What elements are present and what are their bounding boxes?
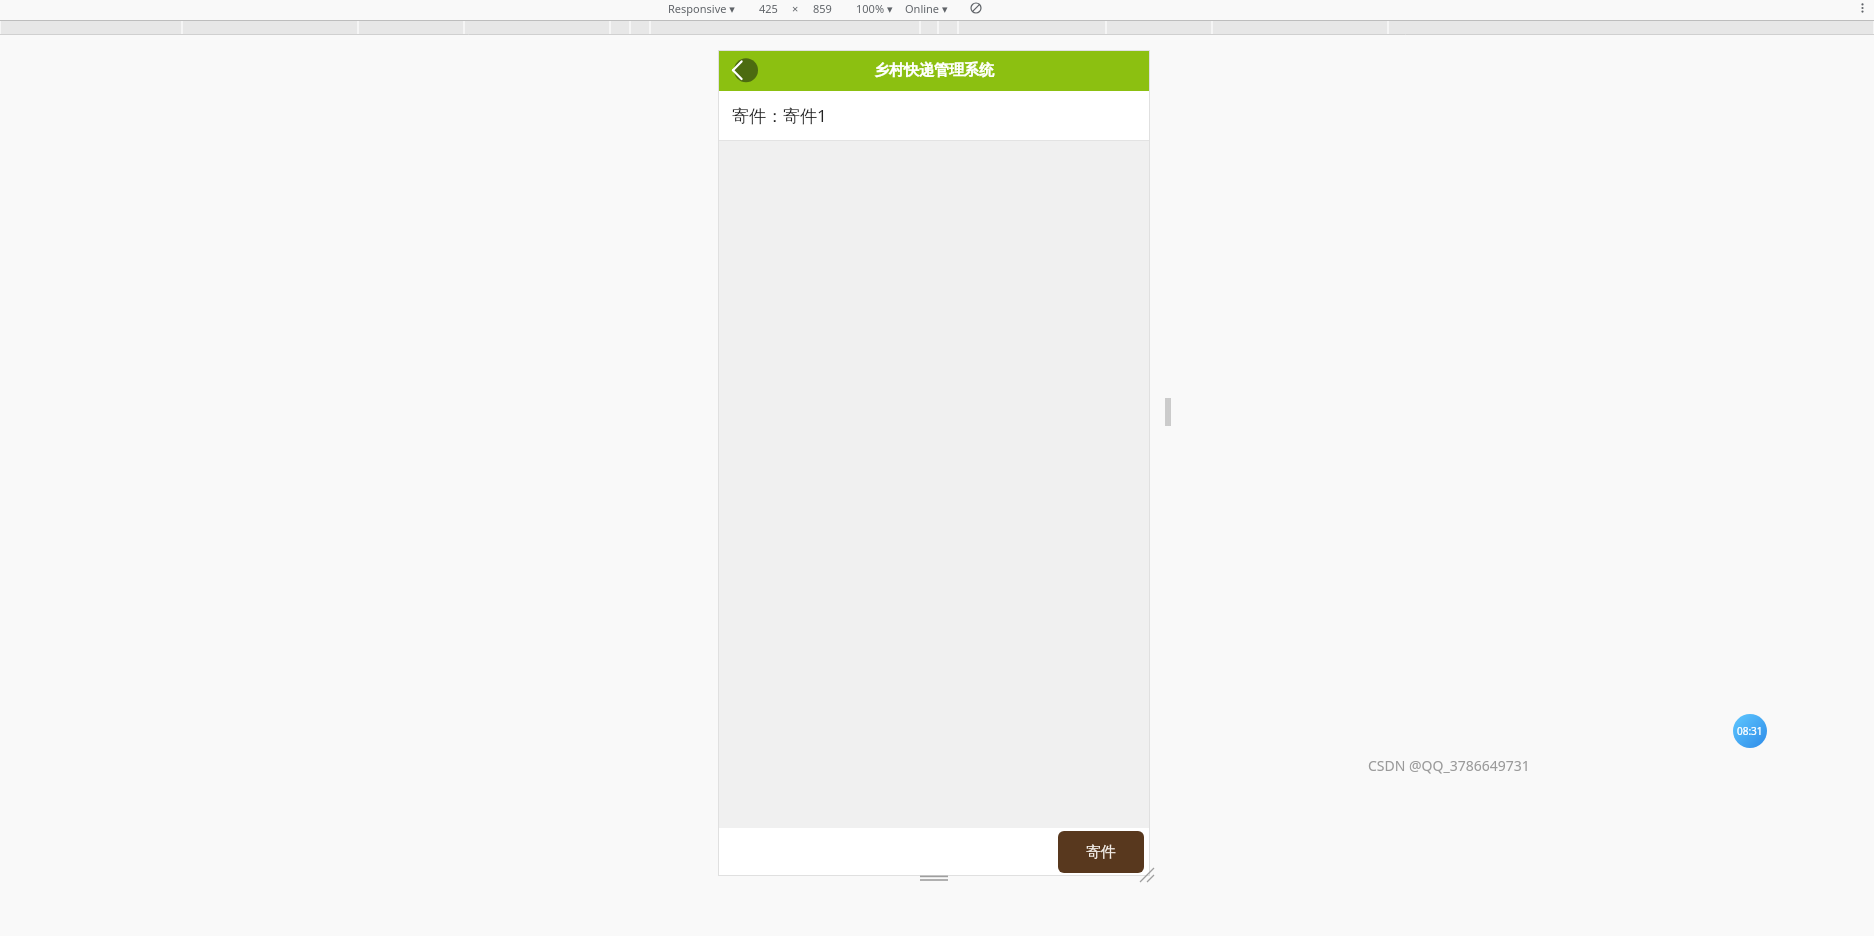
staticText: 乡村快递管理系统 bbox=[874, 61, 994, 80]
staticText: 寄件 bbox=[1086, 843, 1116, 862]
button[interactable]: 08:31 bbox=[1733, 714, 1767, 748]
button[interactable]: Back bbox=[722, 51, 762, 91]
staticText: 08:31 bbox=[1737, 724, 1763, 738]
staticText: 100% ▾ bbox=[856, 1, 893, 16]
staticText: Responsive ▾ bbox=[668, 1, 735, 16]
staticText: 寄件：寄件1 bbox=[732, 104, 827, 127]
button[interactable]: 寄件 bbox=[1058, 831, 1144, 873]
staticText: CSDN @QQ_3786649731 bbox=[1368, 756, 1530, 775]
button[interactable]: 寄件：寄件1 bbox=[718, 91, 1150, 140]
staticText: × bbox=[792, 1, 799, 16]
staticText: Online ▾ bbox=[905, 1, 948, 16]
staticText: 859 bbox=[813, 1, 832, 16]
staticText: 425 bbox=[759, 1, 778, 16]
